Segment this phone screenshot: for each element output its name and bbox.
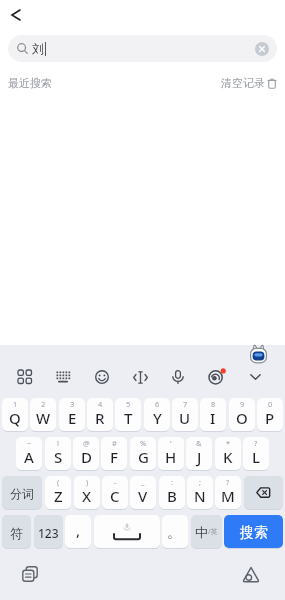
staticText: ?: [254, 438, 258, 448]
button[interactable]: 。: [162, 515, 188, 548]
button[interactable]: ;: [187, 476, 213, 509]
button[interactable]: [90, 365, 114, 389]
staticText: H: [165, 447, 177, 467]
button[interactable]: [255, 42, 269, 56]
staticText: /英: [208, 527, 218, 537]
button[interactable]: 分词: [2, 476, 42, 509]
button[interactable]: [94, 515, 160, 548]
staticText: J: [197, 447, 202, 467]
button[interactable]: &: [186, 437, 212, 470]
staticText: ?: [226, 477, 230, 487]
staticText: U: [179, 408, 191, 428]
button[interactable]: [244, 476, 283, 509]
staticText: 5: [126, 399, 131, 409]
staticText: S: [54, 447, 63, 467]
staticText: P: [265, 408, 275, 428]
button[interactable]: (: [45, 476, 71, 509]
button[interactable]: ?: [243, 437, 269, 470]
button[interactable]: [243, 365, 267, 389]
button[interactable]: 123: [34, 515, 63, 548]
button[interactable]: :: [159, 476, 185, 509]
staticText: L: [252, 447, 261, 467]
button[interactable]: 6: [144, 398, 170, 431]
staticText: A: [24, 447, 34, 467]
button[interactable]: @: [73, 437, 99, 470]
button[interactable]: 3: [59, 398, 85, 431]
staticText: 7: [183, 399, 188, 409]
staticText: O: [236, 408, 248, 428]
staticText: ): [86, 477, 89, 487]
staticText: ~: [27, 438, 32, 448]
staticText: X: [82, 486, 92, 506]
button[interactable]: 中: [191, 515, 222, 548]
staticText: 9: [240, 399, 245, 409]
button[interactable]: -: [102, 476, 128, 509]
button[interactable]: 2: [30, 398, 56, 431]
staticText: 123: [38, 525, 59, 541]
button[interactable]: *: [215, 437, 241, 470]
staticText: W: [36, 408, 51, 428]
staticText: 中: [195, 524, 208, 540]
button[interactable]: %: [130, 437, 156, 470]
button[interactable]: [239, 562, 263, 586]
staticText: @: [83, 438, 90, 448]
button[interactable]: 9: [229, 398, 255, 431]
button[interactable]: 清空记录: [221, 76, 277, 90]
button[interactable]: [13, 365, 37, 389]
staticText: 1: [13, 399, 18, 409]
staticText: :: [171, 477, 174, 487]
staticText: D: [81, 447, 92, 467]
staticText: 搜索: [240, 524, 268, 542]
staticText: 刘: [32, 41, 44, 56]
staticText: Q: [9, 408, 21, 428]
staticText: Z: [54, 486, 63, 506]
staticText: 8: [211, 399, 216, 409]
button[interactable]: 4: [87, 398, 113, 431]
staticText: ': [170, 438, 172, 448]
button[interactable]: 1: [2, 398, 28, 431]
staticText: V: [138, 486, 148, 506]
staticText: ;: [199, 477, 202, 487]
button[interactable]: #: [101, 437, 127, 470]
staticText: F: [110, 447, 118, 467]
button[interactable]: _: [130, 476, 156, 509]
button[interactable]: 7: [172, 398, 198, 431]
staticText: 符: [10, 525, 23, 541]
staticText: Y: [153, 408, 162, 428]
button[interactable]: [18, 562, 42, 586]
button[interactable]: 符: [2, 515, 31, 548]
staticText: R: [95, 408, 105, 428]
button[interactable]: ,: [65, 515, 91, 548]
staticText: (: [57, 477, 60, 487]
button[interactable]: ): [74, 476, 100, 509]
button[interactable]: !: [45, 437, 71, 470]
staticText: _: [141, 477, 145, 487]
button[interactable]: 0: [257, 398, 283, 431]
staticText: G: [138, 447, 149, 467]
staticText: C: [110, 486, 120, 506]
staticText: &: [196, 438, 202, 448]
button[interactable]: 5: [115, 398, 141, 431]
staticText: N: [194, 486, 206, 506]
button[interactable]: [5, 4, 27, 26]
button[interactable]: [205, 365, 229, 389]
staticText: B: [167, 486, 177, 506]
button[interactable]: ~: [16, 437, 42, 470]
staticText: K: [223, 447, 233, 467]
button[interactable]: 搜索: [224, 515, 283, 548]
staticText: -: [114, 477, 117, 487]
staticText: 清空记录: [221, 76, 265, 90]
button[interactable]: ?: [215, 476, 241, 509]
button[interactable]: [128, 365, 152, 389]
staticText: 4: [98, 399, 103, 409]
staticText: #: [112, 438, 117, 448]
button[interactable]: [51, 365, 75, 389]
button[interactable]: 8: [200, 398, 226, 431]
staticText: 0: [268, 399, 273, 409]
button[interactable]: ': [158, 437, 184, 470]
staticText: 分词: [10, 486, 34, 501]
staticText: I: [210, 408, 216, 428]
staticText: 6: [155, 399, 160, 409]
button[interactable]: [166, 365, 190, 389]
button[interactable]: 刘: [8, 35, 277, 62]
